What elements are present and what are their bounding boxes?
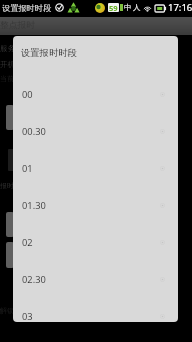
other: Battery bbox=[155, 5, 166, 12]
staticText: 00 bbox=[22, 88, 33, 101]
staticText: 设置报时时段 bbox=[2, 3, 52, 13]
staticText: 中 bbox=[124, 3, 132, 12]
staticText: 59 bbox=[109, 3, 118, 12]
staticText: 设置报时时段 bbox=[21, 47, 77, 59]
other: Notification bbox=[55, 3, 64, 12]
button[interactable]: 01.30 bbox=[13, 187, 178, 224]
staticText: 开机自 bbox=[0, 60, 23, 69]
staticText: 01 bbox=[22, 162, 33, 175]
staticText: 整点报时 bbox=[0, 20, 36, 31]
staticText: 解锁 bbox=[0, 306, 14, 315]
staticText: 报时 bbox=[0, 181, 14, 190]
staticText: 当前状 bbox=[0, 74, 21, 83]
staticText: 02 bbox=[22, 236, 33, 249]
staticText: 01.30 bbox=[22, 199, 46, 212]
other: Wi-Fi bbox=[144, 4, 151, 12]
staticText: 02.30 bbox=[22, 273, 46, 286]
staticText: 00.30 bbox=[22, 125, 46, 138]
button[interactable]: 00.30 bbox=[13, 113, 178, 150]
button[interactable]: 03 bbox=[13, 298, 178, 322]
button[interactable]: 01 bbox=[13, 150, 178, 187]
staticText: 03 bbox=[22, 310, 33, 322]
button[interactable]: 02 bbox=[13, 224, 178, 261]
button[interactable]: 00 bbox=[13, 76, 178, 113]
button[interactable]: 02.30 bbox=[13, 261, 178, 298]
staticText: 17:16 bbox=[168, 1, 192, 14]
staticText: 服务开 bbox=[0, 44, 23, 53]
other: Sync bbox=[67, 2, 80, 14]
staticText: 人 bbox=[133, 3, 141, 12]
